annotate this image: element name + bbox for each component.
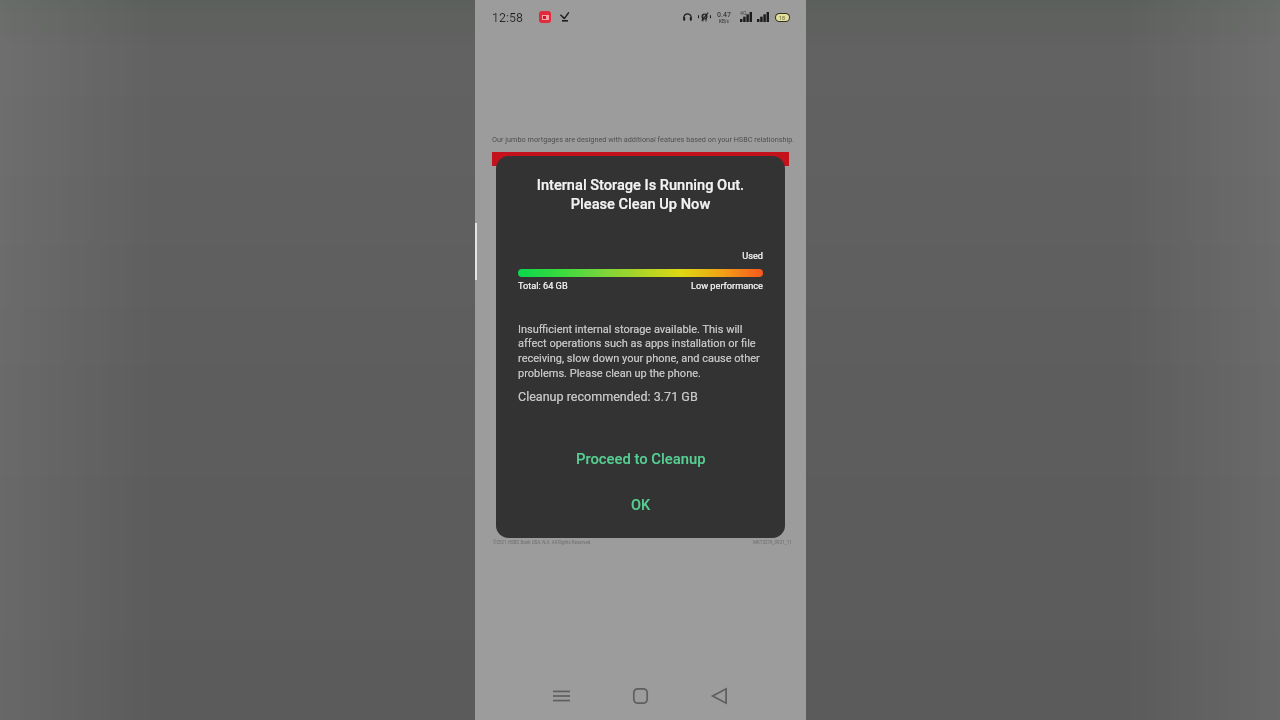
staticText: OK: [631, 497, 651, 514]
staticText: 12:58: [492, 10, 523, 25]
button[interactable]: Home: [620, 676, 660, 716]
staticText: MKT3276_0921_11: [753, 540, 792, 545]
staticText: 0.47: [717, 11, 731, 19]
staticText: Used: [518, 250, 763, 261]
staticText: ©2021 HSBC Bank USA, N.A. All Rights Res…: [493, 540, 592, 545]
staticText: 4G: [740, 10, 747, 16]
staticText: 18: [779, 15, 786, 21]
staticText: Total: 64 GB: [518, 280, 568, 291]
button[interactable]: OK: [496, 486, 785, 524]
staticText: Internal Storage Is Running Out. Please …: [506, 176, 775, 213]
staticText: Insufficient internal storage available.…: [518, 323, 767, 380]
button[interactable]: Recent apps: [541, 676, 581, 716]
staticText: Low performance: [691, 280, 763, 291]
staticText: Cleanup recommended: 3.71 GB: [518, 389, 698, 404]
button[interactable]: Back: [699, 676, 739, 716]
staticText: KB/s: [719, 19, 729, 24]
staticText: Proceed to Cleanup: [576, 450, 706, 467]
button[interactable]: Proceed to Cleanup: [496, 439, 785, 477]
staticText: Our jumbo mortgages are designed with ad…: [492, 135, 795, 144]
